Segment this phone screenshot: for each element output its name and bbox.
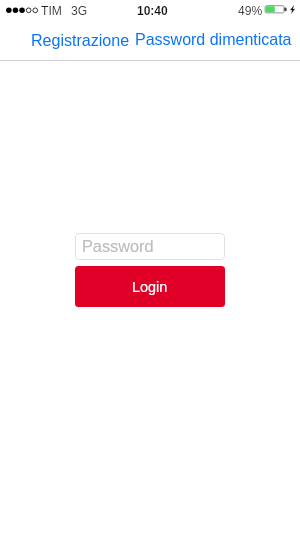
other: Signal strength	[6, 5, 38, 16]
button[interactable]: Password	[75, 233, 225, 260]
staticText: Password dimenticata	[135, 31, 292, 49]
other: Charging	[290, 5, 295, 14]
staticText: Registrazione	[31, 31, 130, 49]
staticText: 3G	[71, 4, 88, 18]
other: Battery 49 percent charging	[264, 5, 287, 14]
staticText: TIM	[41, 4, 62, 18]
staticText: Password	[82, 237, 154, 255]
button[interactable]: Login	[75, 266, 225, 307]
button[interactable]: Registrazione	[26, 26, 135, 54]
staticText: 49%	[238, 4, 263, 18]
button[interactable]: Password dimenticata	[130, 26, 297, 54]
staticText: 10:40	[137, 4, 168, 17]
staticText: Login	[132, 279, 168, 295]
